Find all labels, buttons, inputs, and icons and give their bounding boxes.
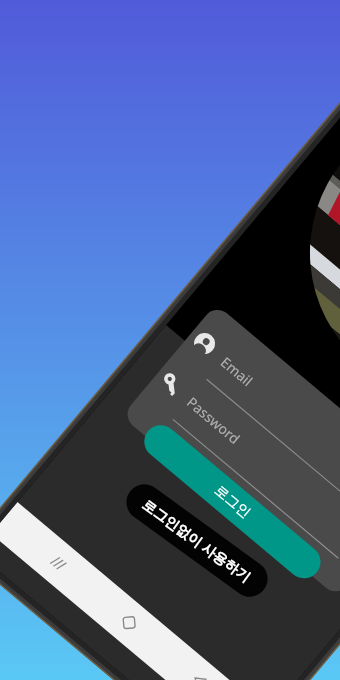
button[interactable]: Login app screenshot mockup: [0, 0, 340, 680]
